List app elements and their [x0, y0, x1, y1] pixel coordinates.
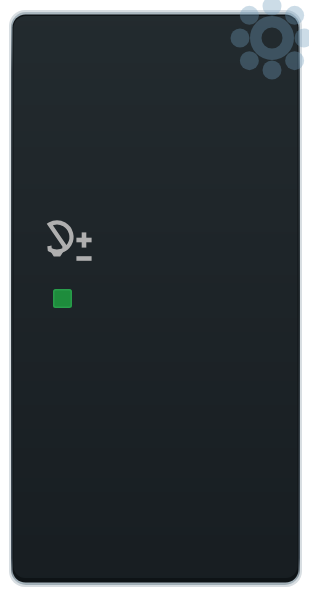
button[interactable]: Settings: [238, 4, 308, 74]
button[interactable]: Status indicator: [48, 284, 76, 312]
button[interactable]: Adjust brightness: [36, 212, 104, 272]
